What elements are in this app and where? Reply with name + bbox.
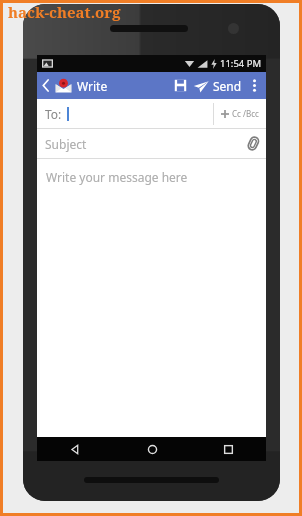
button[interactable]: Save draft [169, 72, 191, 99]
staticText: Write your message here [46, 169, 188, 185]
staticText: Subject [45, 136, 87, 152]
button[interactable]: Attach file [240, 129, 266, 158]
staticText: 11:54 PM [220, 57, 262, 70]
button[interactable]: Write your message here [37, 159, 266, 437]
button[interactable]: Send [193, 72, 242, 99]
button[interactable]: Cc /Bcc [214, 99, 266, 128]
button[interactable]: Back [37, 437, 114, 461]
button[interactable]: Subject [37, 129, 266, 158]
button[interactable]: Write [77, 78, 108, 94]
staticText: Send [213, 78, 242, 94]
staticText: Cc /Bcc [232, 108, 259, 119]
button[interactable]: Back [37, 72, 55, 99]
button[interactable]: Recent apps [190, 437, 266, 461]
button[interactable]: Home [114, 437, 190, 461]
staticText: hack-cheat.org [8, 2, 121, 22]
button[interactable]: To: [37, 99, 266, 128]
button[interactable]: More options [246, 72, 262, 99]
staticText: To: [45, 106, 62, 122]
staticText: Write [77, 78, 108, 94]
